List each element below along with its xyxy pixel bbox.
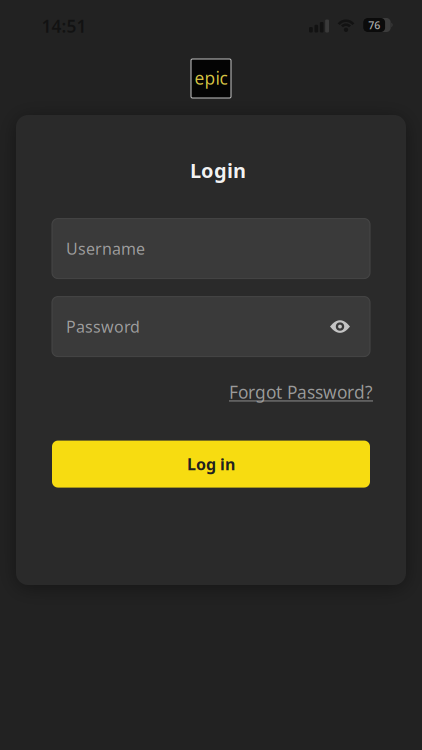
staticText: epic bbox=[194, 66, 227, 89]
staticText: Username bbox=[66, 238, 145, 259]
staticText: Log in bbox=[187, 453, 235, 475]
staticText: 14:51 bbox=[41, 14, 86, 37]
button[interactable]: Forgot Password? bbox=[229, 381, 373, 404]
staticText: Forgot Password? bbox=[229, 381, 373, 404]
staticText: Password bbox=[66, 316, 140, 337]
staticText: 76 bbox=[368, 18, 380, 32]
button[interactable]: Log in bbox=[52, 441, 370, 488]
button[interactable]: Password bbox=[52, 297, 370, 357]
staticText: Login bbox=[190, 157, 246, 184]
button[interactable]: Username bbox=[52, 219, 370, 279]
